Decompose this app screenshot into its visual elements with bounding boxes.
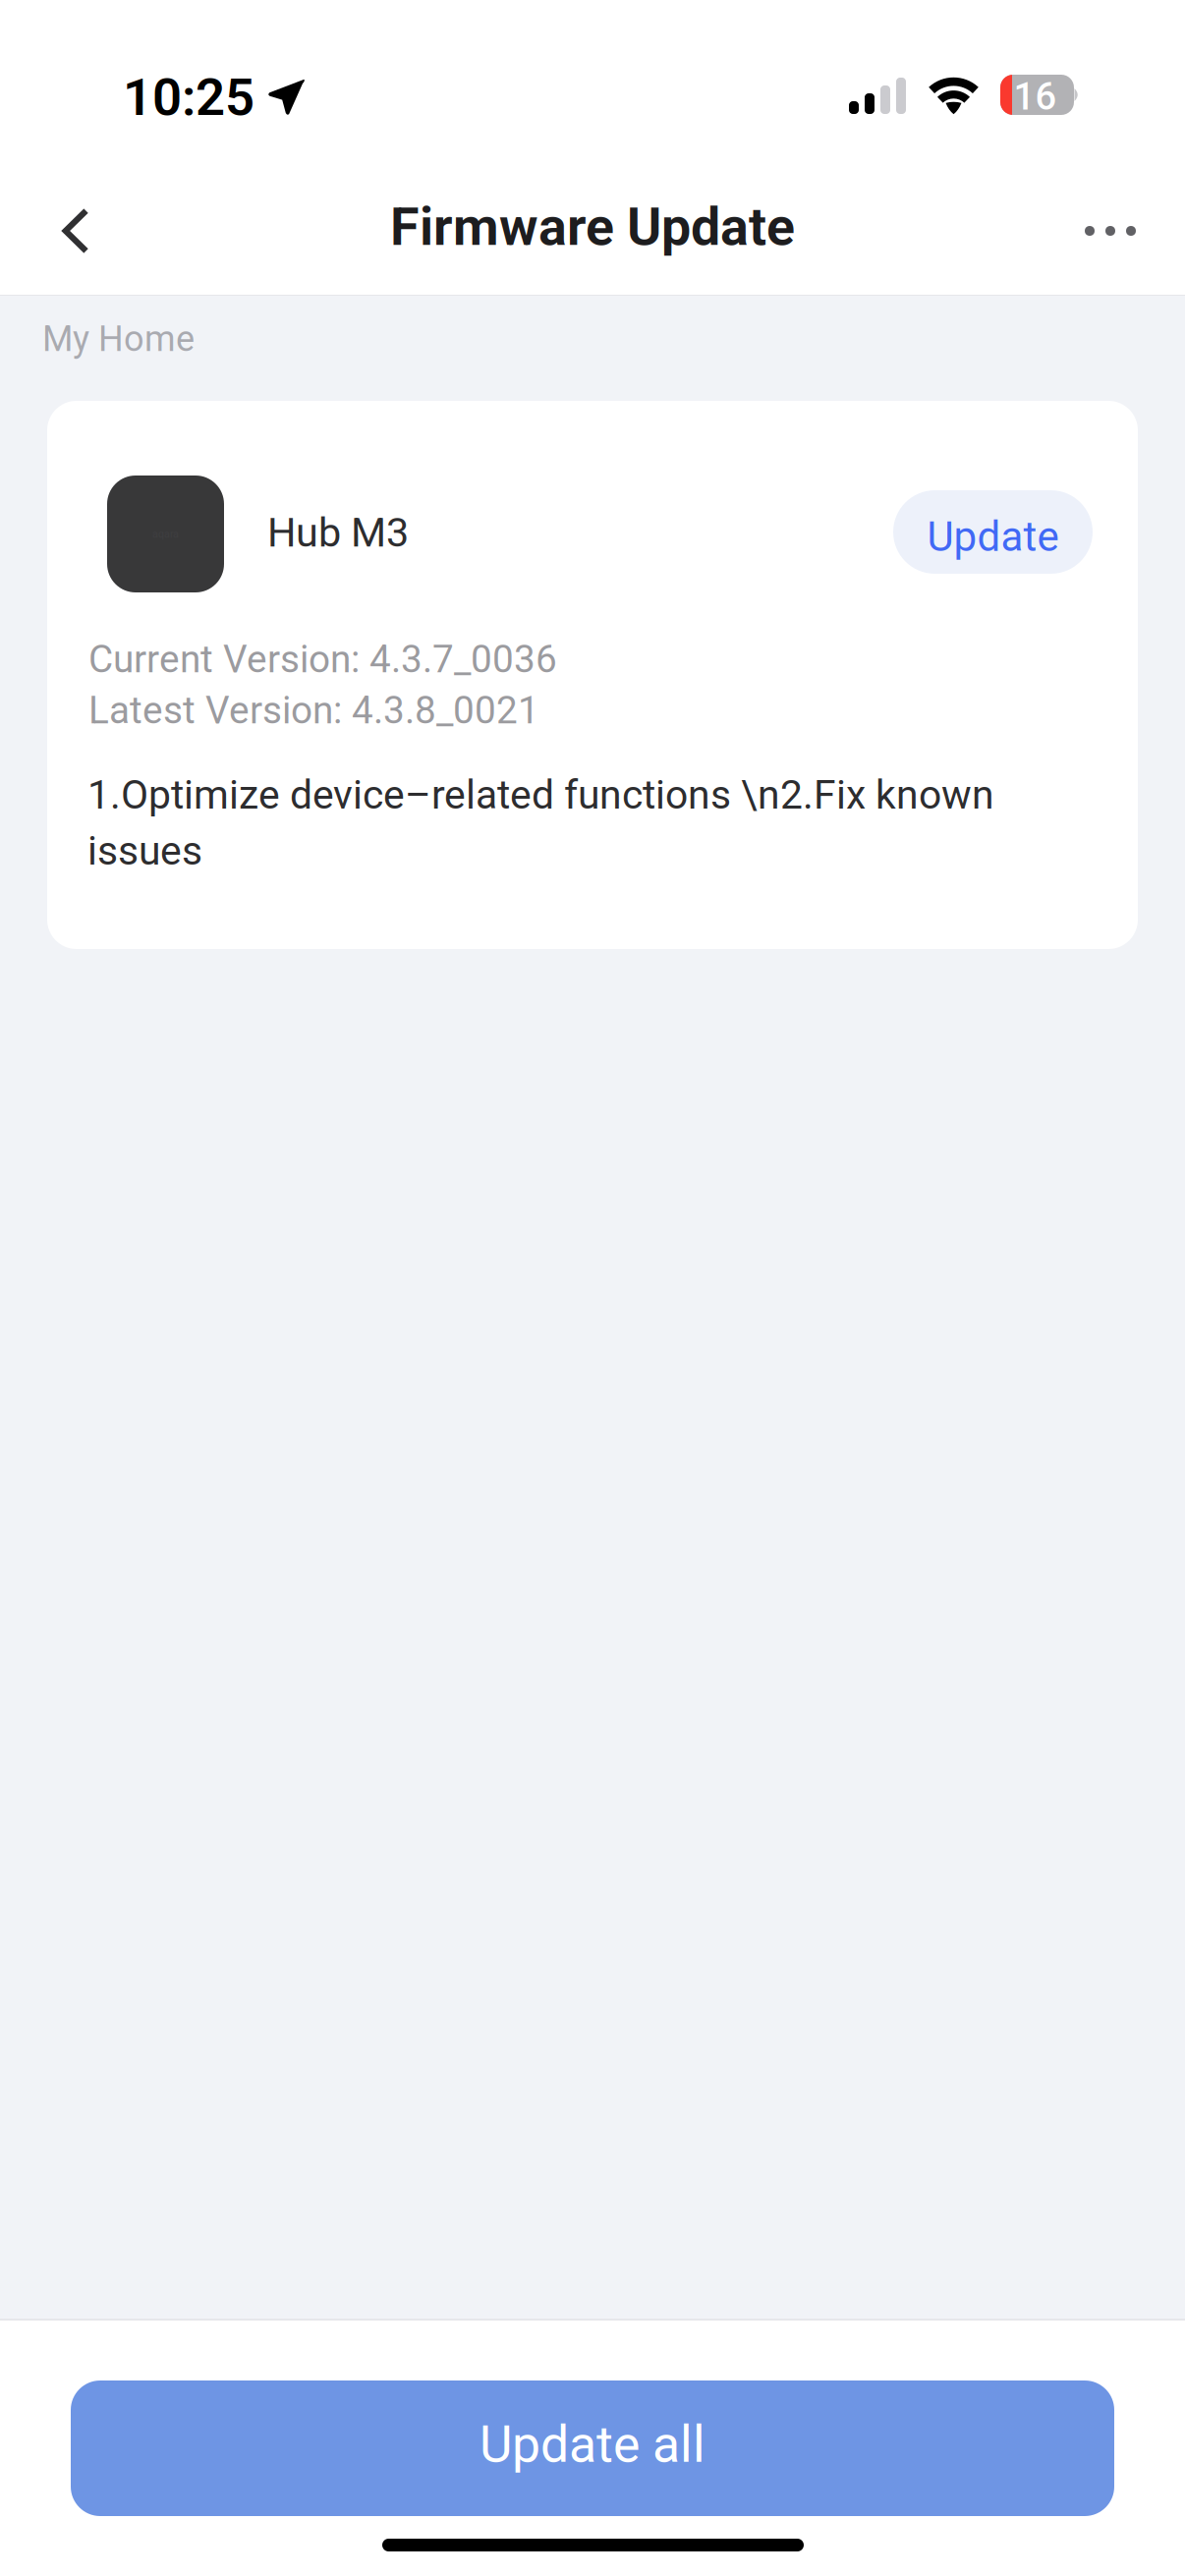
- staticText: 10:25: [123, 67, 254, 128]
- staticText: My Home: [42, 318, 195, 360]
- button[interactable]: Back: [31, 177, 120, 285]
- button[interactable]: Update: [893, 490, 1093, 574]
- staticText: Current Version: 4.3.7_0036: [88, 637, 557, 681]
- staticText: issues: [87, 827, 202, 874]
- staticText: Hub M3: [267, 509, 409, 556]
- button[interactable]: Update all: [71, 2380, 1114, 2516]
- staticText: Update all: [480, 2415, 705, 2474]
- staticText: 16: [1014, 75, 1057, 119]
- button[interactable]: More options: [1066, 177, 1155, 285]
- staticText: Firmware Update: [390, 196, 795, 258]
- staticText: Update: [927, 513, 1059, 561]
- staticText: 1.Optimize device–related functions \n2.…: [87, 771, 994, 818]
- staticText: Latest Version: 4.3.8_0021: [88, 688, 539, 733]
